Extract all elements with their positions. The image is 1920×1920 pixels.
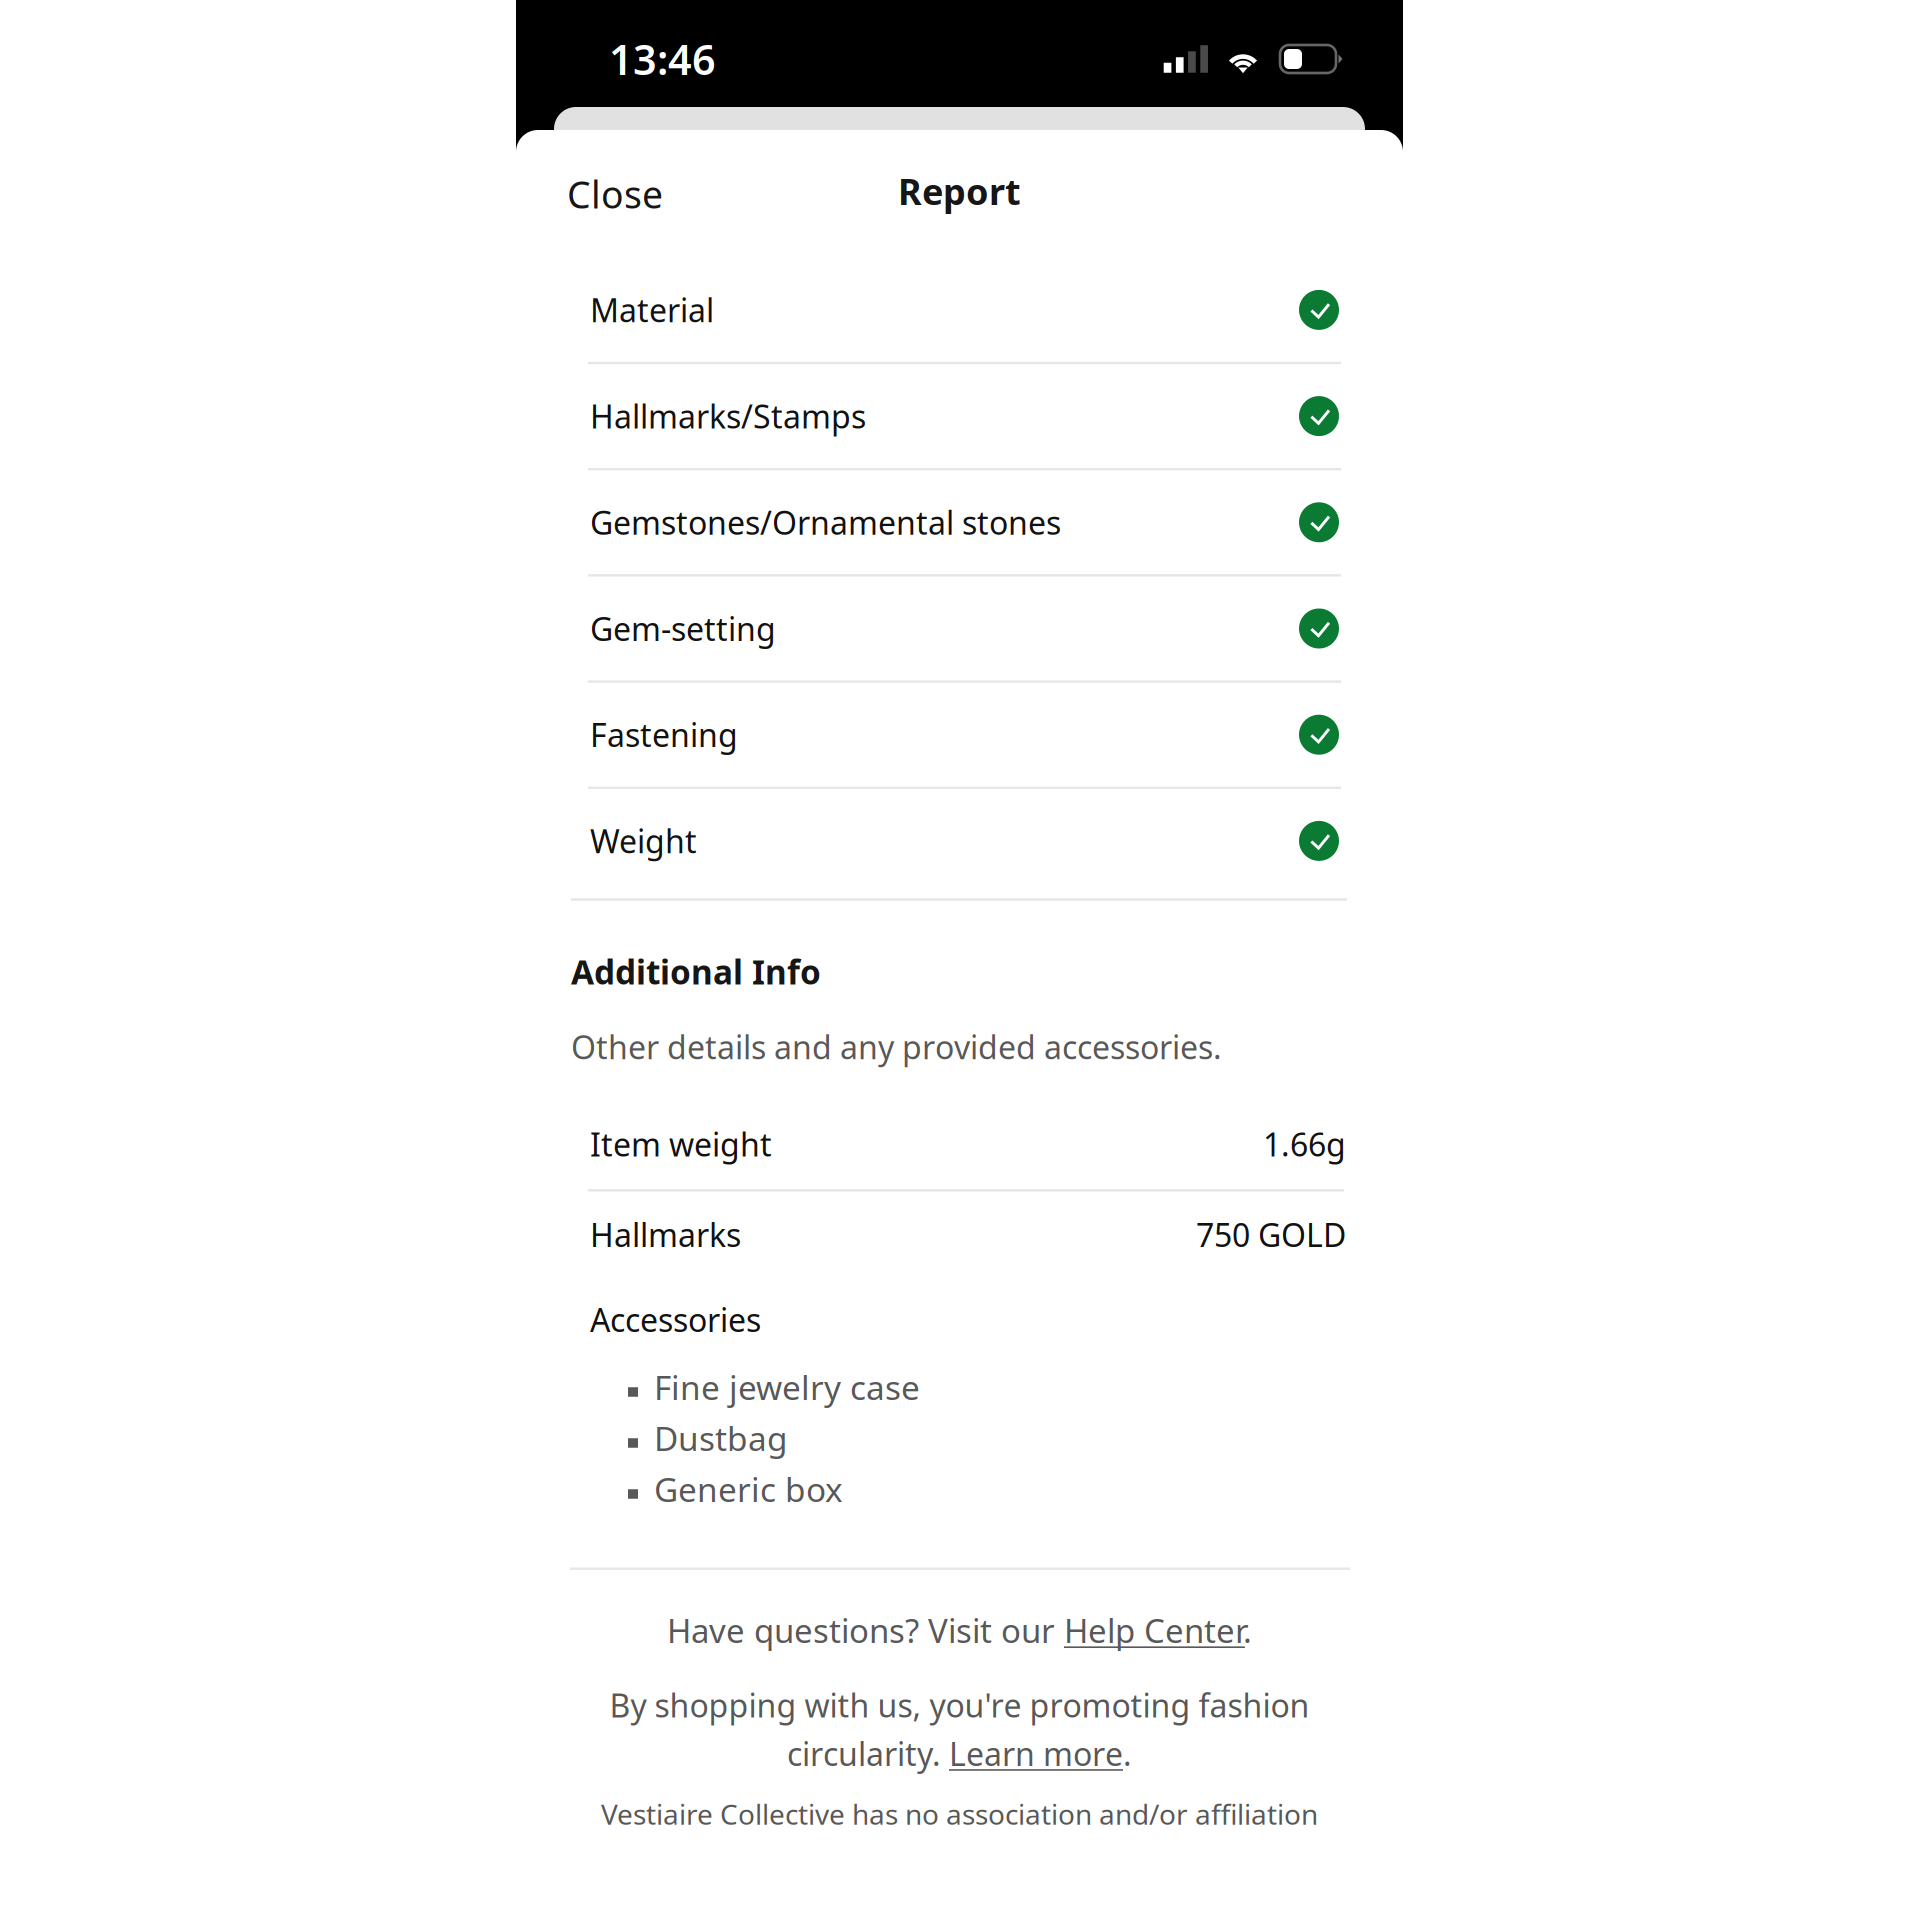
button[interactable]: Have questions? Visit our Help Center. <box>516 1580 1403 1680</box>
staticText: Fastening <box>590 713 738 756</box>
staticText: Accessories <box>590 1298 761 1341</box>
button[interactable]: Gem-setting <box>516 577 1403 680</box>
staticText: Gem-setting <box>590 607 776 650</box>
staticText: Hallmarks/Stamps <box>590 395 866 437</box>
button[interactable]: Gemstones/Ornamental stones <box>516 470 1403 574</box>
staticText: Other details and any provided accessori… <box>571 1026 1222 1068</box>
staticText: Gemstones/Ornamental stones <box>590 501 1061 544</box>
staticText: 750 GOLD <box>1196 1213 1346 1256</box>
button[interactable]: Fastening <box>516 683 1403 787</box>
staticText: Generic box <box>654 1467 843 1511</box>
staticText: Item weight <box>590 1123 772 1165</box>
button[interactable]: Hallmarks/Stamps <box>516 364 1403 468</box>
staticText: 1.66g <box>1263 1123 1346 1165</box>
staticText: Fine jewelry case <box>654 1365 920 1409</box>
button[interactable]: Material <box>516 258 1403 362</box>
button[interactable]: circularity. Learn more. <box>516 1730 1403 1777</box>
staticText: Vestiaire Collective has no association … <box>601 1795 1318 1832</box>
staticText: Material <box>590 289 714 331</box>
staticText: Additional Info <box>571 949 821 994</box>
staticText: 13:46 <box>609 32 716 86</box>
staticText: Close <box>567 169 663 219</box>
staticText: Have questions? Visit our Help Center. <box>667 1608 1252 1653</box>
staticText: Dustbag <box>654 1416 788 1460</box>
button[interactable]: Weight <box>516 789 1403 893</box>
staticText: By shopping with us, you're promoting fa… <box>609 1684 1309 1726</box>
staticText: Weight <box>590 820 697 862</box>
staticText: circularity. Learn more. <box>787 1732 1132 1775</box>
staticText: Report <box>898 167 1021 215</box>
staticText: Hallmarks <box>590 1213 741 1256</box>
button[interactable]: Close <box>516 130 756 258</box>
